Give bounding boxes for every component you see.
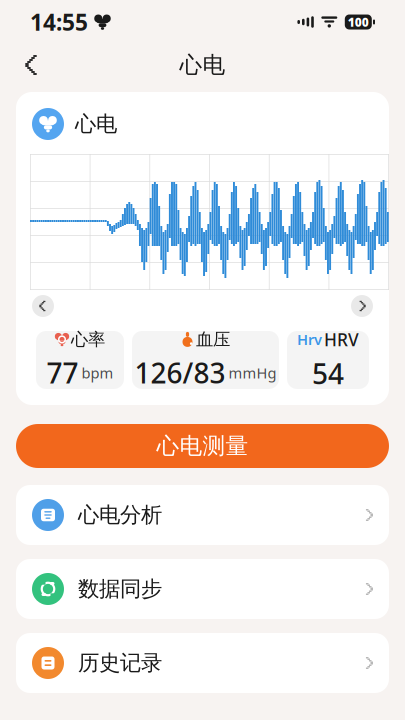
staticText: 100	[348, 14, 369, 30]
staticText: 心电	[75, 111, 117, 137]
staticText: 14:55	[30, 7, 88, 37]
button[interactable]: 上一段波形	[32, 295, 54, 317]
button[interactable]: 心电测量	[16, 424, 389, 468]
staticText: bpm	[81, 363, 113, 383]
staticText: HRV	[324, 328, 359, 351]
staticText: Hrv	[297, 330, 322, 349]
staticText: 心率	[71, 329, 105, 350]
staticText: 心电	[179, 51, 225, 79]
staticText: 心电分析	[78, 502, 162, 528]
button[interactable]: 心电分析	[16, 485, 389, 545]
staticText: 54	[312, 355, 344, 392]
button[interactable]: 数据同步	[16, 559, 389, 619]
staticText: mmHg	[228, 363, 276, 383]
staticText: 血压	[196, 329, 230, 350]
button[interactable]: 返回	[12, 45, 52, 85]
staticText: 126/83	[134, 354, 225, 391]
staticText: 77	[46, 354, 78, 391]
staticText: 心电测量	[156, 432, 248, 460]
button[interactable]: 历史记录	[16, 633, 389, 693]
staticText: 数据同步	[78, 576, 162, 602]
staticText: 历史记录	[78, 650, 162, 676]
button[interactable]: 下一段波形	[351, 295, 373, 317]
